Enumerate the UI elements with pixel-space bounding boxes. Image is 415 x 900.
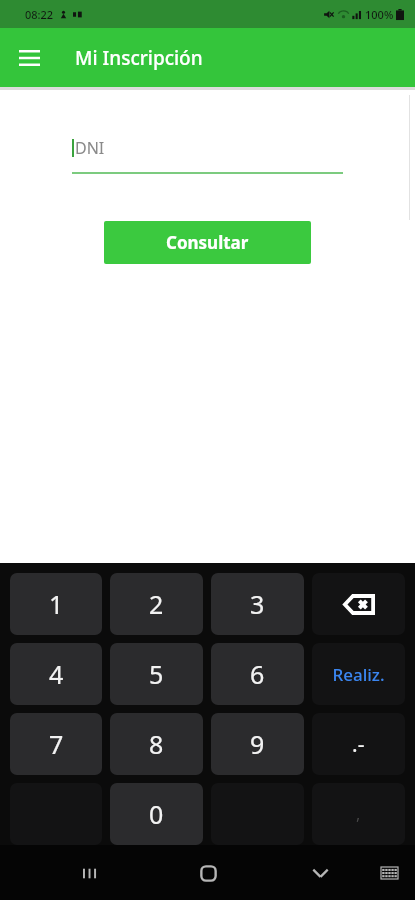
button[interactable]: Cambiar teclado (369, 853, 409, 893)
button[interactable]: Inicio (188, 853, 228, 893)
button[interactable]: 0 (110, 783, 203, 845)
staticText: 5 (149, 657, 164, 691)
button[interactable]: 4 (10, 643, 102, 705)
staticText: Consultar (166, 231, 249, 254)
staticText: 4 (49, 657, 64, 691)
button[interactable]: DNI (72, 137, 343, 174)
button[interactable]: Borrar (312, 573, 405, 635)
staticText: 0 (149, 797, 164, 831)
staticText: 7 (49, 727, 64, 761)
staticText: 08:22 (25, 7, 54, 22)
button[interactable]: 3 (211, 573, 304, 635)
button[interactable]: 2 (110, 573, 203, 635)
staticText: 3 (250, 587, 265, 621)
staticText: 6 (250, 657, 265, 691)
button[interactable]: 9 (211, 713, 304, 775)
button[interactable]: 5 (110, 643, 203, 705)
staticText: .- (352, 730, 365, 759)
staticText: 1 (49, 587, 64, 621)
staticText: Mi Inscripción (75, 45, 203, 71)
button[interactable]: Realiz. (312, 643, 405, 705)
button[interactable]: .- (312, 713, 405, 775)
button[interactable]: 7 (10, 713, 102, 775)
staticText: 9 (250, 727, 265, 761)
button[interactable]: Consultar (104, 221, 311, 264)
staticText: , (356, 803, 361, 825)
staticText: 8 (149, 727, 164, 761)
staticText: DNI (75, 137, 105, 159)
button[interactable]: Abrir menú (11, 40, 47, 76)
button[interactable]: Recientes (70, 853, 110, 893)
button[interactable]: 8 (110, 713, 203, 775)
staticText: 100% (365, 7, 394, 22)
staticText: 2 (149, 587, 164, 621)
button[interactable]: 6 (211, 643, 304, 705)
button[interactable]: 1 (10, 573, 102, 635)
staticText: Realiz. (332, 663, 385, 686)
button[interactable]: Ocultar teclado (300, 853, 340, 893)
